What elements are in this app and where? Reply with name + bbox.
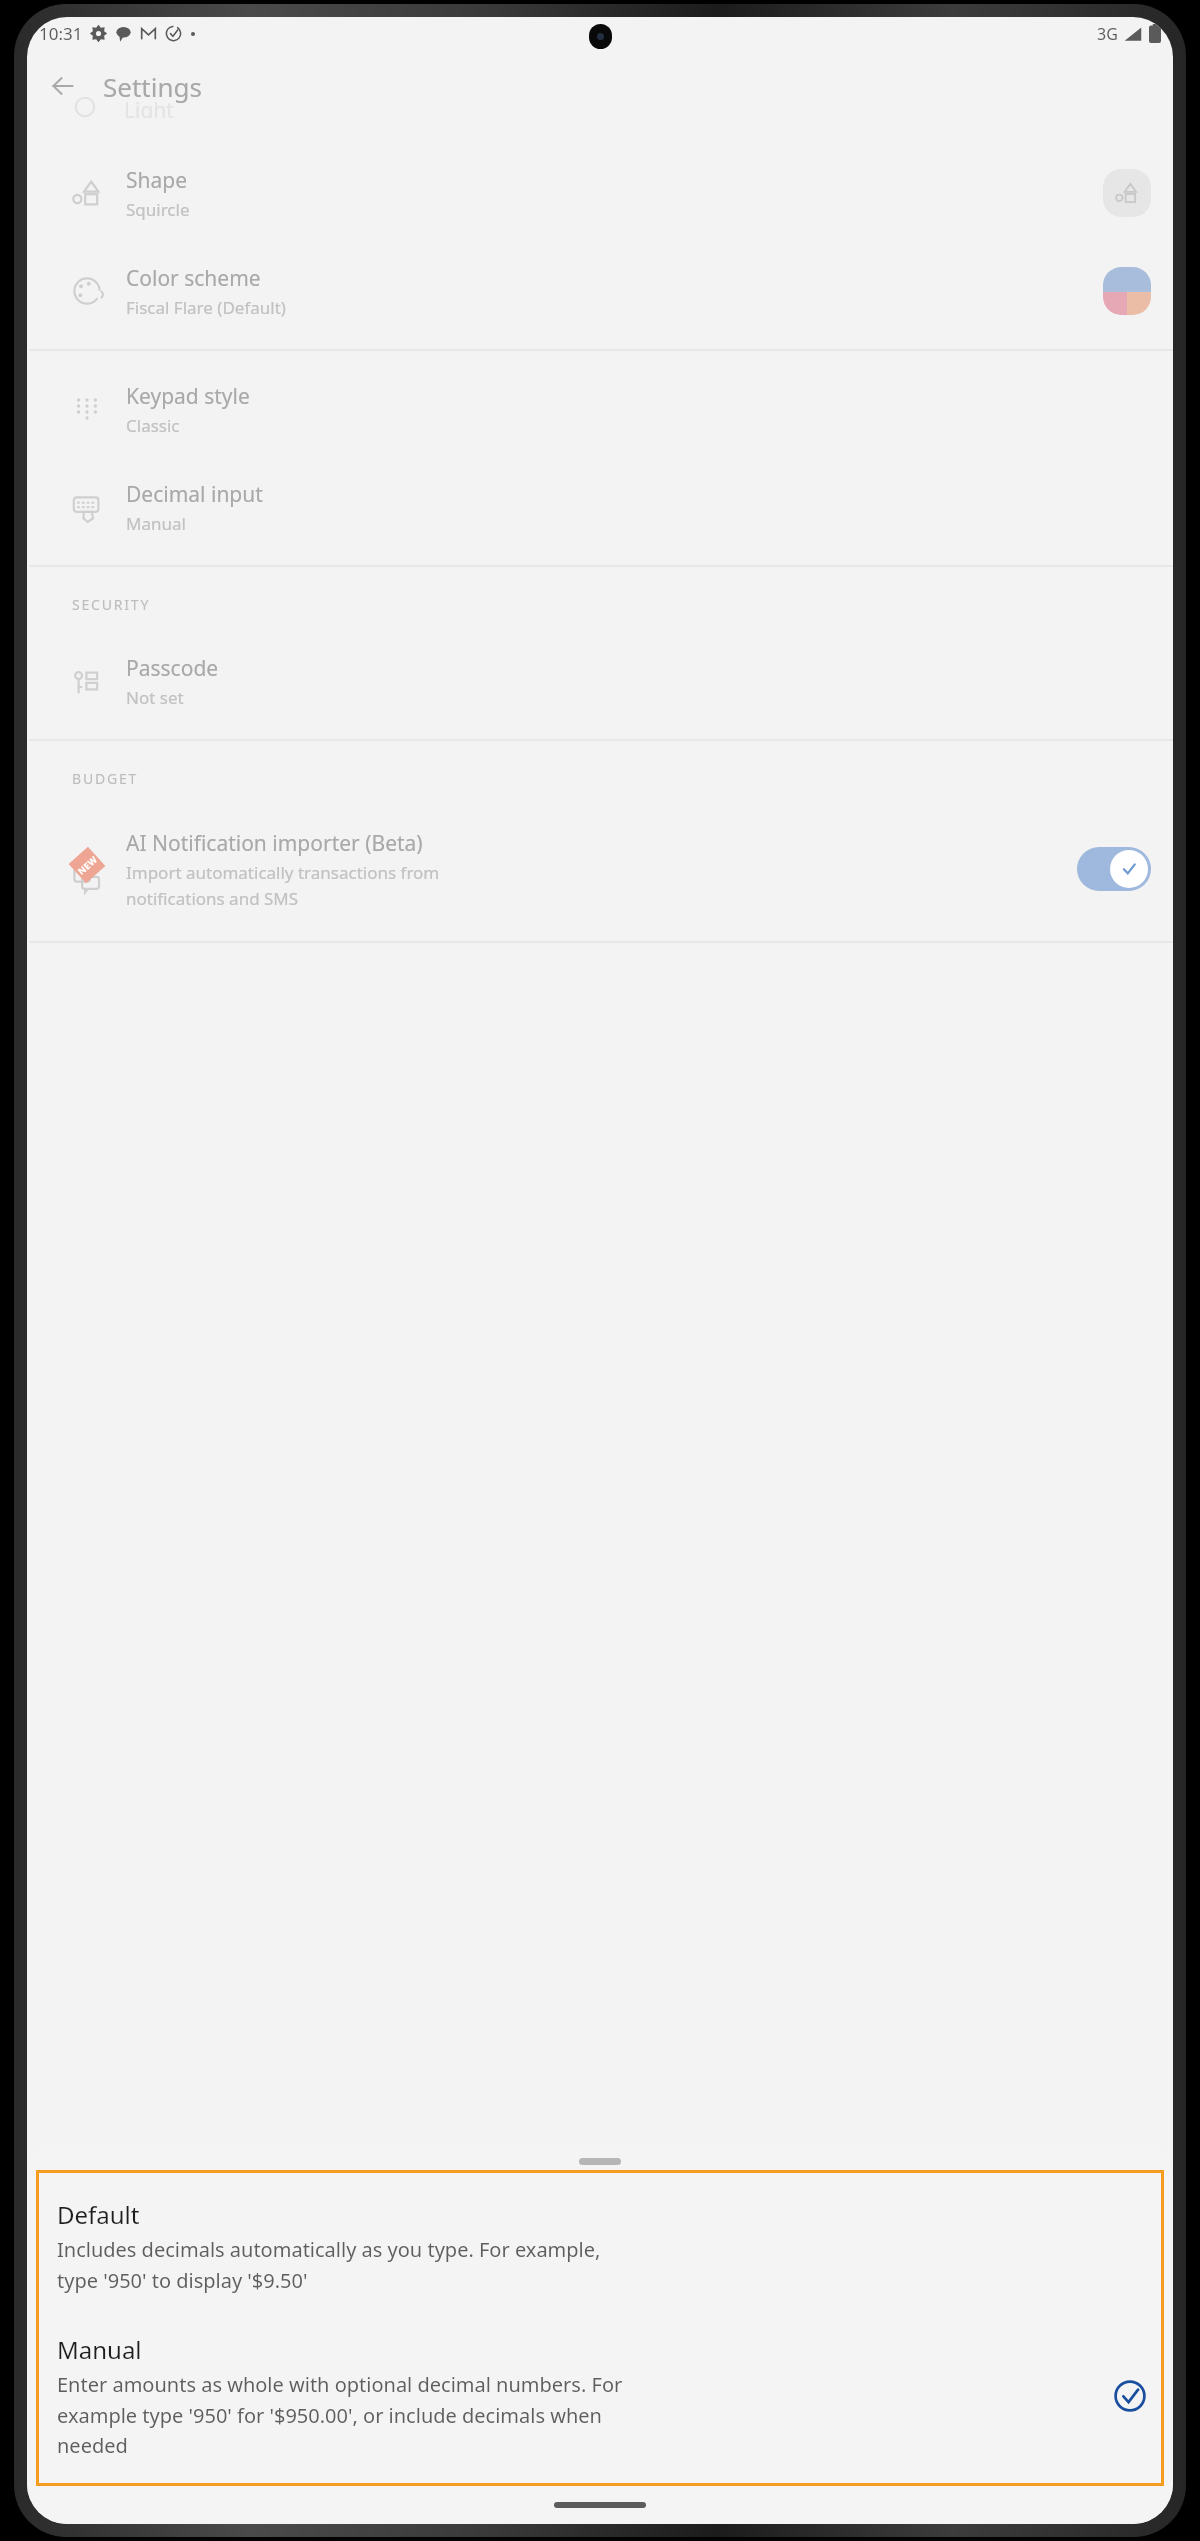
staticText: Manual: [126, 512, 186, 535]
staticText: Includes decimals automatically as you t…: [57, 2236, 601, 2293]
staticText: Light: [124, 96, 174, 118]
staticText: 3G: [1097, 23, 1118, 45]
staticText: NEW: [75, 852, 100, 877]
button[interactable]: Decimal input: [27, 458, 1173, 556]
button[interactable]: Manual: [36, 2327, 1164, 2464]
button[interactable]: NEW: [27, 806, 1173, 932]
staticText: 10:31: [39, 22, 83, 45]
button[interactable]: AI Notification importer toggle, on: [1077, 847, 1151, 891]
staticText: Import automatically transactions from n…: [126, 861, 440, 910]
staticText: Fiscal Flare (Default): [126, 296, 286, 319]
staticText: Settings: [103, 69, 202, 104]
staticText: Enter amounts as whole with optional dec…: [57, 2371, 623, 2458]
button[interactable]: Keypad style: [27, 360, 1173, 458]
staticText: Manual: [57, 2333, 142, 2366]
button[interactable]: Passcode: [27, 632, 1173, 730]
staticText: Passcode: [126, 654, 219, 683]
staticText: Not set: [126, 686, 184, 709]
button[interactable]: Back: [37, 60, 89, 112]
staticText: Squircle: [126, 198, 190, 221]
staticText: Decimal input: [126, 480, 263, 509]
staticText: Classic: [126, 414, 180, 437]
staticText: Keypad style: [126, 382, 250, 411]
staticText: AI Notification importer (Beta): [126, 829, 423, 858]
button[interactable]: Default: [36, 2192, 1164, 2299]
staticText: Shape: [126, 166, 188, 195]
staticText: BUDGET: [72, 769, 139, 788]
button[interactable]: Color scheme: [27, 242, 1173, 340]
staticText: SECURITY: [72, 595, 151, 614]
button[interactable]: Shape: [27, 144, 1173, 242]
staticText: Color scheme: [126, 264, 261, 293]
staticText: Default: [57, 2198, 140, 2231]
